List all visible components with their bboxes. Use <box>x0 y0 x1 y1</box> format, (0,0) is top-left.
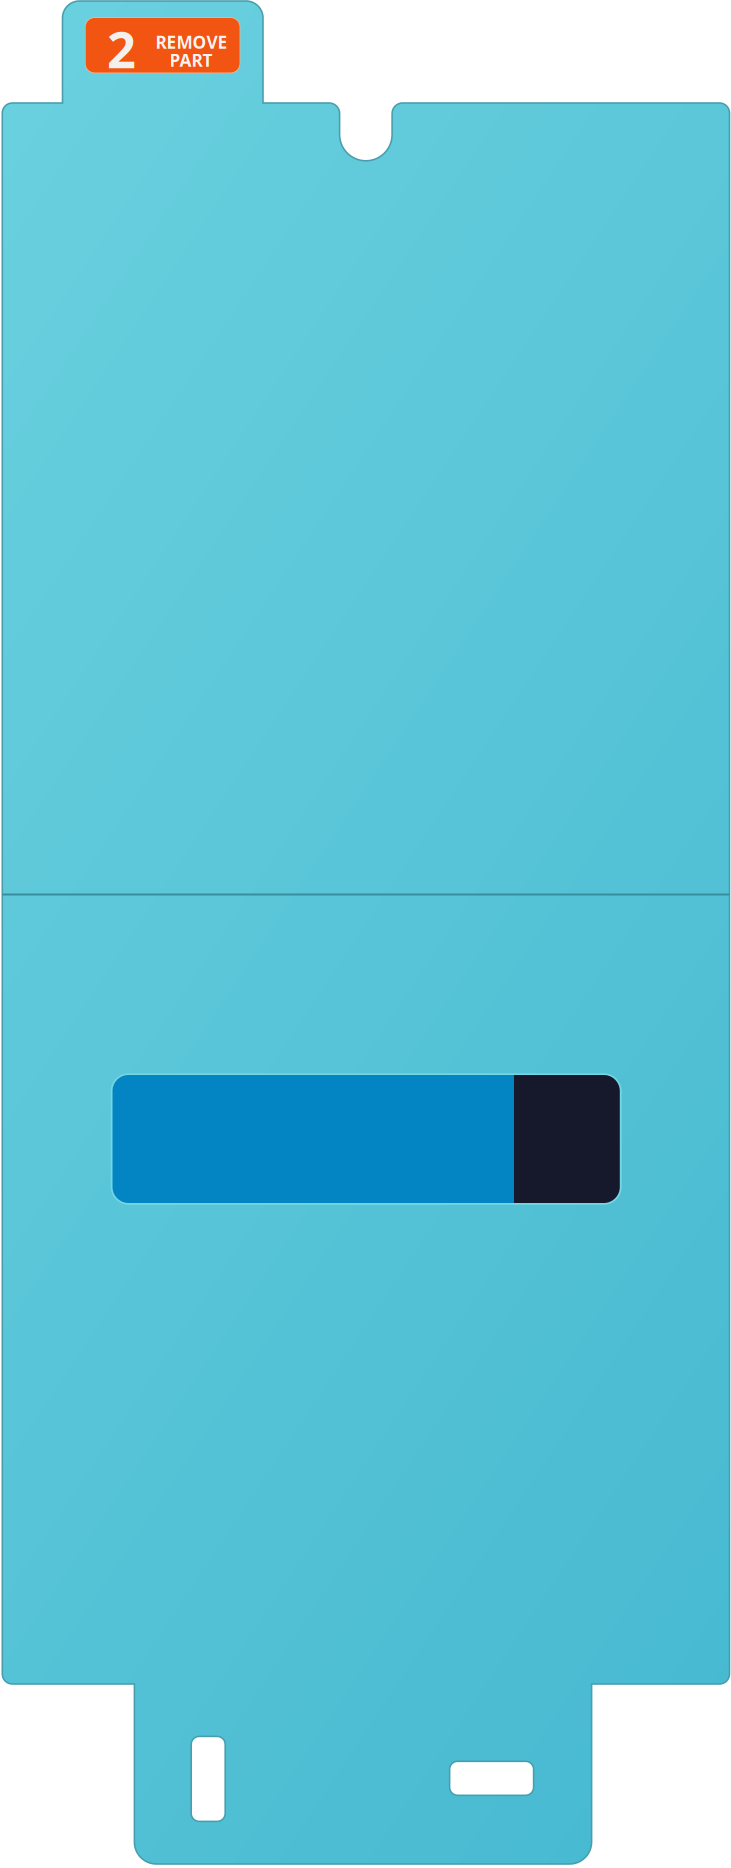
staticText: 2 <box>107 15 136 82</box>
staticText: REMOVE <box>156 31 228 54</box>
button[interactable]: 2 <box>86 24 240 79</box>
staticText: PART <box>170 48 213 71</box>
button[interactable]: Adhesive strip <box>112 1075 620 1203</box>
